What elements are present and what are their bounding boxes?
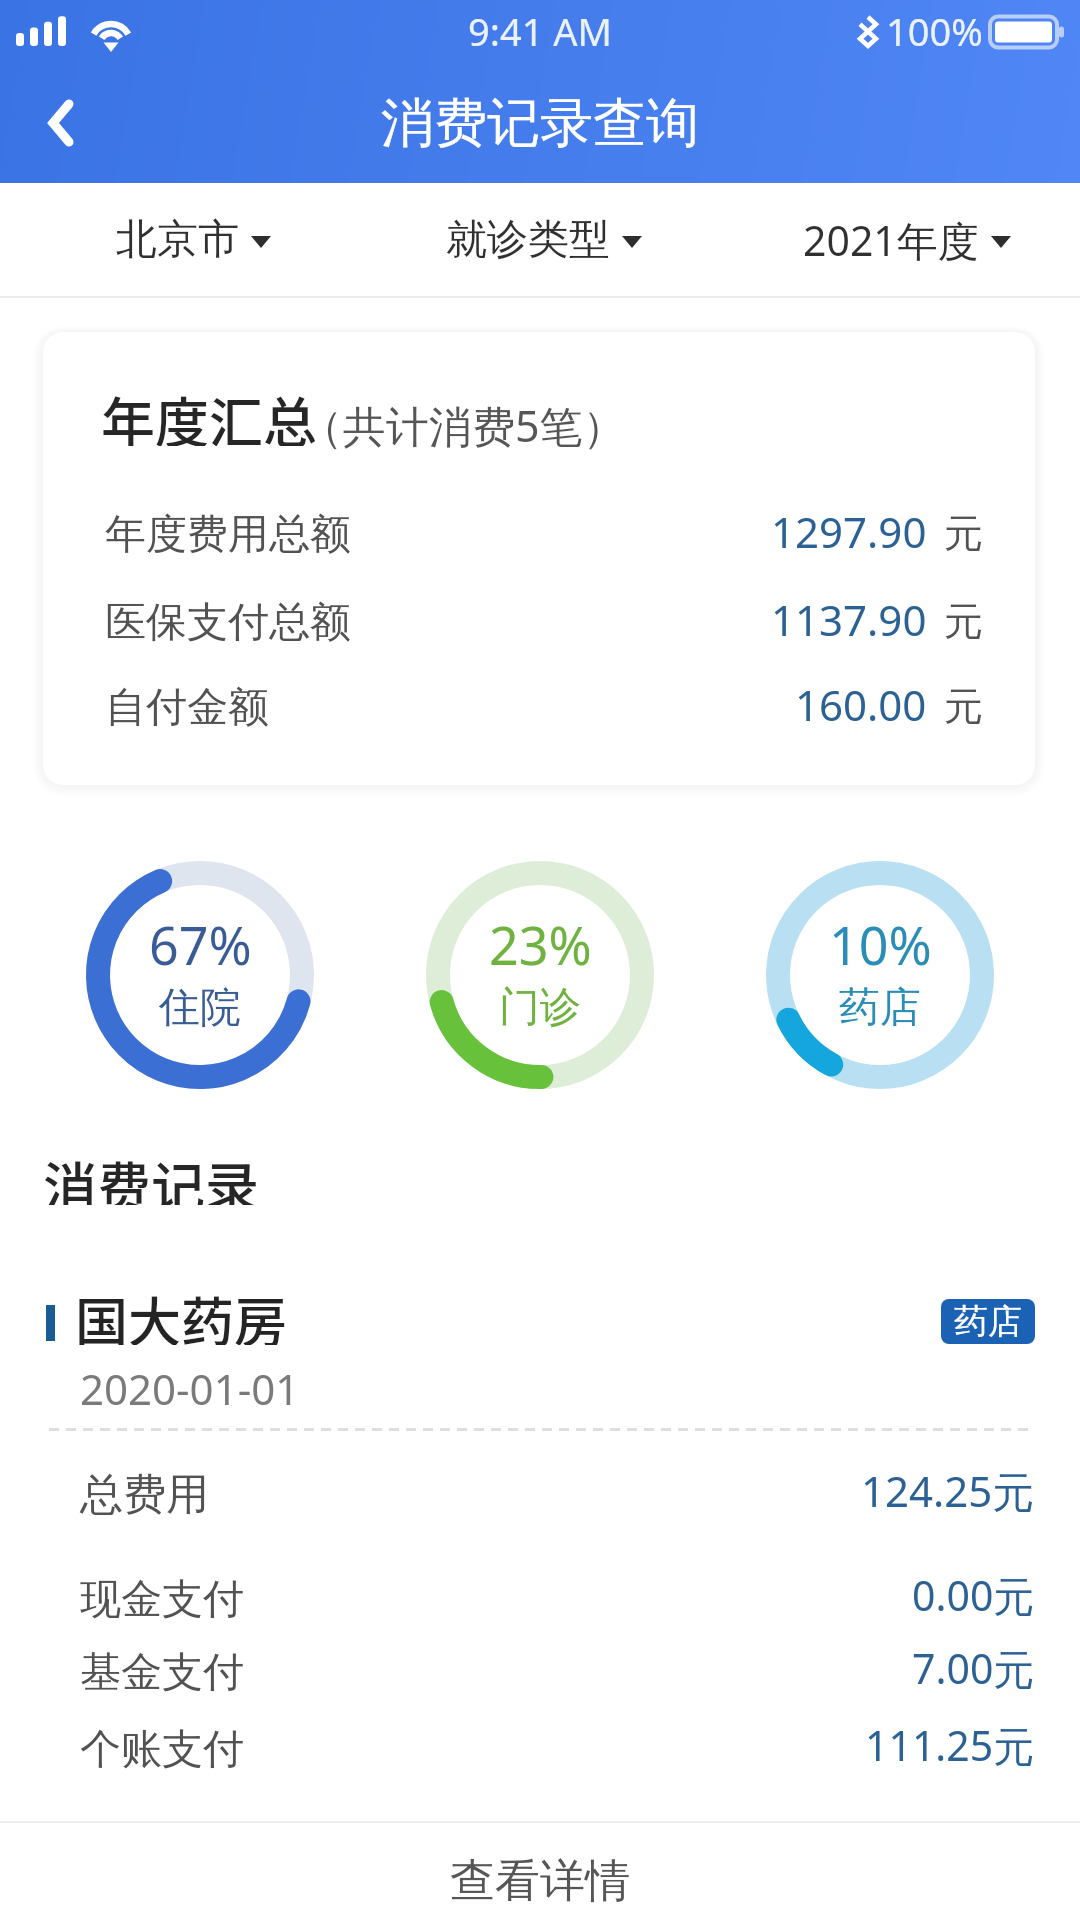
staticText: 门诊 bbox=[499, 982, 581, 1034]
button[interactable]: 2021年度 bbox=[737, 183, 1077, 296]
staticText: 国大药房 bbox=[75, 1281, 287, 1345]
staticText: 2021年度 bbox=[803, 212, 979, 268]
staticText: 160.00 bbox=[795, 676, 927, 732]
staticText: 总费用 bbox=[80, 1468, 209, 1522]
staticText: 10% bbox=[829, 909, 932, 977]
button[interactable]: Back bbox=[16, 78, 106, 168]
staticText: 消费记录查询 bbox=[381, 90, 699, 157]
staticText: 基金支付 bbox=[80, 1647, 244, 1699]
staticText: 医保支付总额 bbox=[105, 597, 351, 649]
staticText: 住院 bbox=[159, 982, 241, 1034]
staticText: （共计消费5笔） bbox=[300, 396, 626, 455]
staticText: 年度费用总额 bbox=[105, 509, 351, 561]
staticText: 2020-01-01 bbox=[80, 1360, 300, 1416]
staticText: 药店 bbox=[839, 982, 921, 1034]
button[interactable]: 国大药房 bbox=[0, 1281, 1080, 1345]
button[interactable]: 北京市 bbox=[23, 183, 363, 296]
staticText: 个账支付 bbox=[80, 1724, 244, 1776]
staticText: 1297.90 bbox=[771, 503, 927, 559]
staticText: 0.00元 bbox=[912, 1567, 1035, 1623]
staticText: 药店 bbox=[954, 1300, 1022, 1343]
staticText: 1137.90 bbox=[771, 591, 927, 647]
staticText: 23% bbox=[489, 909, 592, 977]
staticText: 现金支付 bbox=[80, 1574, 244, 1626]
staticText: 9:41 AM bbox=[468, 5, 613, 57]
staticText: 100% bbox=[886, 5, 983, 57]
staticText: 元 bbox=[944, 682, 983, 731]
staticText: 124.25元 bbox=[861, 1462, 1035, 1519]
staticText: 67% bbox=[149, 909, 252, 977]
button[interactable]: 查看详情 bbox=[0, 1823, 1080, 1921]
staticText: 111.25元 bbox=[865, 1717, 1035, 1773]
staticText: 就诊类型 bbox=[446, 214, 610, 266]
staticText: 消费记录 bbox=[43, 1145, 259, 1205]
staticText: 元 bbox=[944, 597, 983, 646]
staticText: 查看详情 bbox=[450, 1853, 630, 1910]
staticText: 北京市 bbox=[116, 214, 239, 266]
staticText: 年度汇总 bbox=[101, 380, 317, 446]
staticText: 元 bbox=[944, 509, 983, 558]
button[interactable]: 药店 bbox=[941, 1299, 1035, 1344]
staticText: 7.00元 bbox=[912, 1640, 1035, 1696]
button[interactable]: 就诊类型 bbox=[374, 183, 714, 296]
staticText: 自付金额 bbox=[105, 682, 269, 734]
button[interactable]: 年度汇总 bbox=[43, 332, 1035, 785]
